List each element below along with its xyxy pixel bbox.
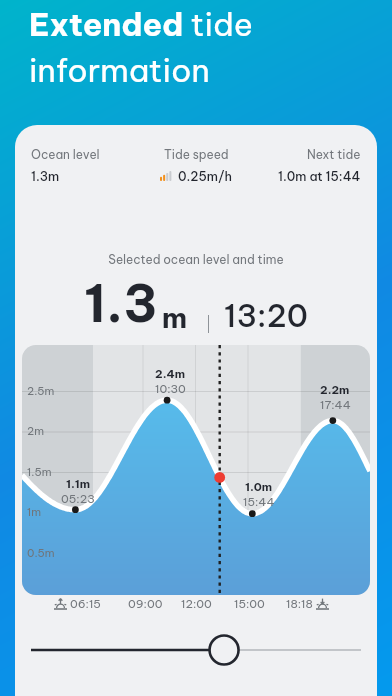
staticText: 17:44 xyxy=(320,397,351,412)
staticText: Next tide xyxy=(307,147,361,162)
staticText: m xyxy=(162,300,188,335)
staticText: 2.2m xyxy=(320,382,350,397)
staticText: 1.5m xyxy=(27,465,52,479)
staticText: 1.1m xyxy=(66,476,91,491)
staticText: 0.25m/h xyxy=(178,168,232,184)
staticText: 0.5m xyxy=(27,546,55,560)
staticText: 10:30 xyxy=(155,381,186,396)
staticText: 1.3 xyxy=(84,271,158,336)
staticText: 18:18 xyxy=(286,596,313,611)
button[interactable] xyxy=(31,628,361,672)
other: Sunrise xyxy=(54,598,67,610)
staticText: 1.0m at 15:44 xyxy=(278,168,361,184)
staticText: Extended tide information xyxy=(29,4,289,90)
staticText: 13:20 xyxy=(224,296,308,335)
staticText: 2.4m xyxy=(155,366,186,381)
staticText: 2m xyxy=(27,424,44,438)
staticText: 05:23 xyxy=(61,491,95,506)
staticText: 12:00 xyxy=(181,596,212,611)
staticText: 06:15 xyxy=(70,596,101,611)
staticText: 09:00 xyxy=(128,596,163,611)
other: Sunset xyxy=(316,598,329,610)
staticText: 1m xyxy=(27,505,42,519)
staticText: 1.0m xyxy=(245,479,273,494)
staticText: 1.3m xyxy=(31,168,60,184)
staticText: Tide speed xyxy=(164,147,229,162)
staticText: Selected ocean level and time xyxy=(15,252,377,267)
staticText: 15:44 xyxy=(243,494,275,509)
staticText: 15:00 xyxy=(234,596,265,611)
staticText: Ocean level xyxy=(31,147,100,162)
staticText: 2.5m xyxy=(27,384,55,398)
